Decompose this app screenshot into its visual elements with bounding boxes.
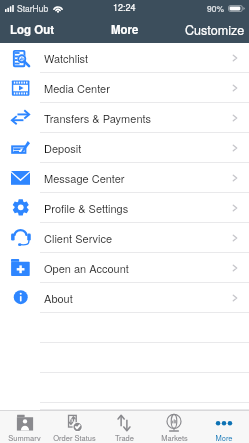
staticText: Client Service bbox=[44, 230, 113, 246]
staticText: Deposit bbox=[44, 140, 82, 156]
staticText: Transfers & Payments bbox=[44, 110, 152, 126]
staticText: Open an Account bbox=[44, 260, 129, 276]
staticText: Media Center bbox=[44, 80, 110, 96]
staticText: StarHub bbox=[17, 2, 49, 14]
button[interactable]: Trade bbox=[99, 411, 149, 443]
button[interactable]: About bbox=[0, 283, 249, 313]
staticText: Markets bbox=[161, 432, 188, 441]
button[interactable]: Watchlist bbox=[0, 43, 249, 73]
button[interactable]: More bbox=[199, 411, 249, 443]
button[interactable]: Message Center bbox=[0, 163, 249, 193]
staticText: Customize bbox=[185, 21, 245, 37]
staticText: More bbox=[215, 432, 233, 441]
staticText: Message Center bbox=[44, 170, 125, 186]
staticText: More bbox=[111, 21, 139, 37]
button[interactable]: Deposit bbox=[0, 133, 249, 163]
staticText: 12:24 bbox=[113, 1, 136, 14]
button[interactable]: Summary bbox=[0, 411, 49, 443]
staticText: Profile & Settings bbox=[44, 200, 129, 216]
staticText: Trade bbox=[115, 432, 134, 441]
button[interactable]: Order Status bbox=[49, 411, 99, 443]
staticText: 90% bbox=[207, 2, 225, 14]
staticText: Watchlist bbox=[44, 50, 89, 66]
staticText: Order Status bbox=[53, 432, 96, 441]
button[interactable]: Open an Account bbox=[0, 253, 249, 283]
button[interactable]: Transfers & Payments bbox=[0, 103, 249, 133]
button[interactable]: Log Out bbox=[0, 15, 65, 43]
staticText: Log Out bbox=[10, 21, 55, 37]
button[interactable]: Profile & Settings bbox=[0, 193, 249, 223]
button[interactable]: Media Center bbox=[0, 73, 249, 103]
button[interactable]: Customize bbox=[181, 15, 249, 43]
button[interactable]: Client Service bbox=[0, 223, 249, 253]
staticText: Summary bbox=[8, 432, 41, 441]
staticText: About bbox=[44, 290, 73, 306]
button[interactable]: Markets bbox=[149, 411, 199, 443]
